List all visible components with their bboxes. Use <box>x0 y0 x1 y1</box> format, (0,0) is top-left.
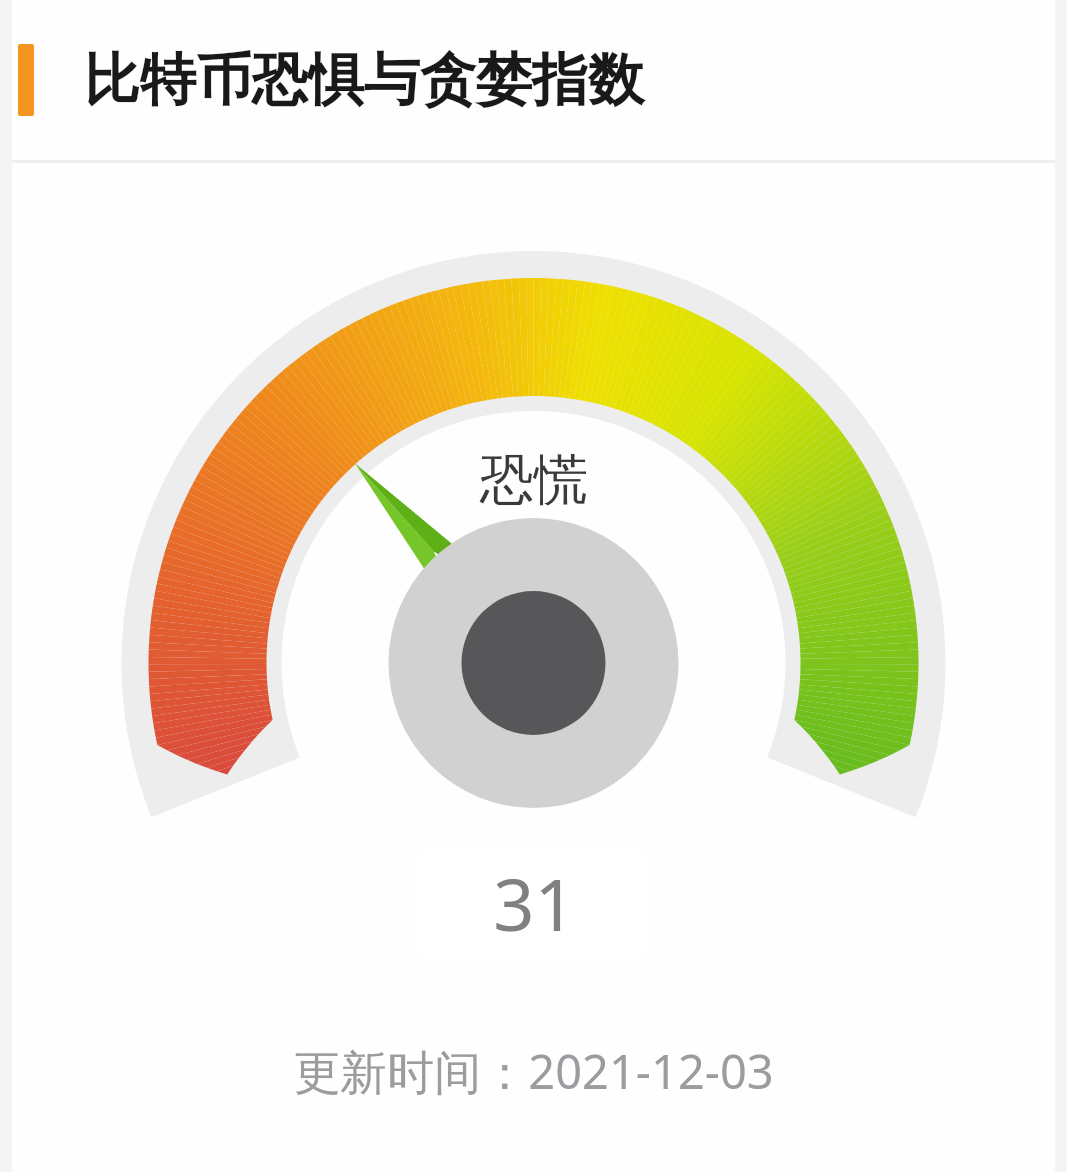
staticText: 31 <box>493 854 576 952</box>
button[interactable]: 恐慌 <box>12 163 1055 1172</box>
staticText: 比特币恐惧与贪婪指数 <box>84 45 644 116</box>
button[interactable]: 31 <box>416 847 652 959</box>
other: Section accent <box>18 44 34 116</box>
staticText: 恐慌 <box>480 446 588 514</box>
button[interactable]: Section accent <box>12 0 1055 160</box>
staticText: 更新时间：2021-12-03 <box>293 1039 774 1103</box>
